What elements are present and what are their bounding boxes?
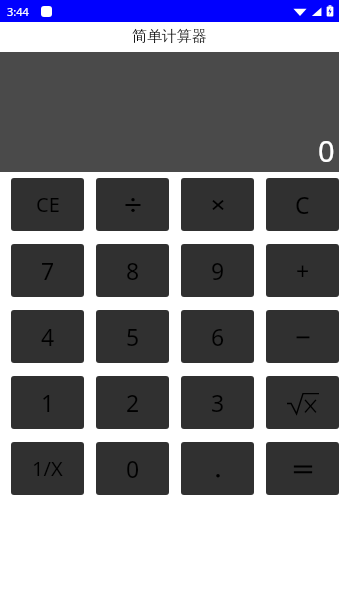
- other: Minus: [293, 327, 313, 347]
- staticText: 4: [41, 321, 55, 352]
- other: Cellular signal: [311, 6, 322, 17]
- button[interactable]: 0: [96, 442, 169, 495]
- staticText: 1/X: [32, 455, 63, 482]
- button[interactable]: Multiply: [181, 178, 254, 231]
- staticText: 6: [211, 321, 225, 352]
- other: Multiply: [209, 196, 227, 214]
- button[interactable]: Minus: [266, 310, 339, 363]
- button[interactable]: 2: [96, 376, 169, 429]
- staticText: 2: [126, 387, 140, 418]
- button[interactable]: 7: [11, 244, 84, 297]
- other: Battery: [326, 5, 334, 17]
- staticText: 5: [126, 321, 140, 352]
- other: Equals: [291, 460, 315, 478]
- button[interactable]: 1: [11, 376, 84, 429]
- other: Decimal point: [210, 457, 226, 481]
- button[interactable]: CE: [11, 178, 84, 231]
- button[interactable]: 5: [96, 310, 169, 363]
- button[interactable]: Divide: [96, 178, 169, 231]
- staticText: +: [296, 255, 310, 286]
- staticText: 3: [211, 387, 225, 418]
- button[interactable]: C: [266, 178, 339, 231]
- button[interactable]: 4: [11, 310, 84, 363]
- button[interactable]: 3: [181, 376, 254, 429]
- staticText: 8: [126, 255, 140, 286]
- staticText: 0: [318, 131, 335, 170]
- staticText: 简单计算器: [132, 27, 207, 46]
- button[interactable]: 8: [96, 244, 169, 297]
- other: Divide: [122, 194, 144, 216]
- staticText: 9: [211, 255, 225, 286]
- button[interactable]: +: [266, 244, 339, 297]
- other: Square root: [286, 390, 320, 416]
- staticText: 7: [41, 255, 55, 286]
- button[interactable]: Equals: [266, 442, 339, 495]
- button[interactable]: 9: [181, 244, 254, 297]
- staticText: C: [295, 189, 310, 220]
- button[interactable]: Square root: [266, 376, 339, 429]
- button[interactable]: Decimal point: [181, 442, 254, 495]
- button[interactable]: 1/X: [11, 442, 84, 495]
- staticText: 3:44: [7, 4, 29, 19]
- staticText: CE: [36, 191, 60, 218]
- staticText: 0: [126, 453, 140, 484]
- staticText: 1: [41, 387, 55, 418]
- button[interactable]: 6: [181, 310, 254, 363]
- other: Wi-Fi: [293, 6, 307, 17]
